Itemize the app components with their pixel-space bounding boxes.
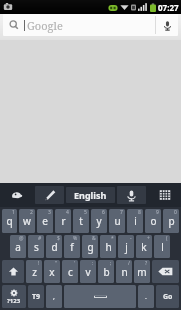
staticText: e	[42, 214, 48, 228]
staticText: b	[103, 265, 110, 279]
staticText: l	[161, 240, 164, 254]
button[interactable]: i	[127, 209, 143, 233]
staticText: j	[125, 240, 128, 254]
button[interactable]: r	[55, 209, 71, 233]
button[interactable]: h	[100, 235, 116, 258]
button[interactable]: English	[66, 187, 115, 203]
staticText: !	[38, 260, 40, 267]
button[interactable]: ,	[46, 285, 62, 308]
staticText: k	[141, 240, 147, 254]
staticText: 7	[120, 209, 123, 216]
staticText: ?	[145, 260, 148, 267]
staticText: h	[105, 240, 112, 254]
button[interactable]: x	[44, 260, 60, 283]
button[interactable]: Search	[3, 14, 178, 36]
staticText: w	[23, 214, 31, 228]
button[interactable]: Shift	[2, 260, 24, 283]
button[interactable]: Symbols	[2, 285, 26, 308]
staticText: +	[147, 235, 150, 242]
staticText: n	[121, 265, 128, 279]
staticText: 6	[102, 209, 105, 216]
button[interactable]: c	[62, 260, 78, 283]
staticText: :	[92, 260, 94, 267]
button[interactable]: Delete	[152, 260, 179, 283]
staticText: ,	[53, 292, 55, 302]
staticText: a	[15, 240, 21, 254]
staticText: /	[128, 260, 130, 267]
button[interactable]: y	[91, 209, 107, 233]
staticText: 5	[84, 209, 87, 216]
staticText: q	[6, 214, 13, 228]
staticText: 8	[138, 209, 141, 216]
button[interactable]: T9	[28, 285, 44, 308]
button[interactable]: k	[136, 235, 152, 258]
staticText: English	[74, 189, 107, 201]
button[interactable]: l	[154, 235, 170, 258]
button[interactable]: Go	[156, 285, 179, 308]
staticText: Google	[27, 18, 63, 33]
button[interactable]: d	[46, 235, 62, 258]
button[interactable]: o	[145, 209, 161, 233]
button[interactable]: z	[26, 260, 42, 283]
staticText: t	[79, 214, 83, 228]
button[interactable]: u	[109, 209, 125, 233]
staticText: s	[34, 240, 39, 254]
staticText: 0	[174, 209, 177, 216]
button[interactable]: Space	[64, 285, 136, 308]
staticText: $	[57, 235, 60, 242]
staticText: x	[49, 265, 55, 279]
button[interactable]: .	[138, 285, 154, 308]
staticText: f	[70, 240, 74, 254]
staticText: i	[134, 214, 137, 228]
staticText: 9	[156, 209, 159, 216]
staticText: "	[55, 260, 58, 267]
button[interactable]: s	[28, 235, 44, 258]
staticText: *	[111, 235, 114, 242]
staticText: d	[51, 240, 58, 254]
staticText: r	[61, 214, 66, 228]
staticText: #	[38, 235, 42, 242]
staticText: g	[87, 240, 94, 254]
staticText: 07:27	[158, 2, 179, 13]
staticText: .	[145, 292, 147, 302]
staticText: -	[130, 235, 132, 242]
staticText: z	[32, 265, 37, 279]
staticText: T9	[32, 292, 41, 302]
staticText: y	[96, 214, 102, 228]
button[interactable]: w	[19, 209, 35, 233]
staticText: v	[85, 265, 91, 279]
button[interactable]: j	[118, 235, 134, 258]
button[interactable]: e	[37, 209, 53, 233]
button[interactable]: Switch keyboard	[148, 183, 181, 207]
staticText: 4	[66, 209, 69, 216]
staticText: p	[168, 214, 175, 228]
staticText: &	[92, 235, 96, 242]
staticText: 3	[48, 209, 51, 216]
button[interactable]: Voice search	[156, 14, 178, 36]
button[interactable]: t	[73, 209, 89, 233]
staticText: Go	[163, 292, 173, 302]
staticText: ?123	[7, 297, 21, 305]
button[interactable]: b	[98, 260, 114, 283]
button[interactable]: Gesture input	[0, 183, 33, 207]
staticText: m	[137, 265, 147, 279]
staticText: o	[150, 214, 157, 228]
button[interactable]: p	[163, 209, 179, 233]
staticText: 2	[30, 209, 33, 216]
button[interactable]: a	[10, 235, 26, 258]
button[interactable]: Voice input	[117, 186, 146, 204]
button[interactable]: v	[80, 260, 96, 283]
button[interactable]: m	[134, 260, 150, 283]
other: Search	[9, 20, 19, 30]
staticText: @	[19, 235, 24, 242]
button[interactable]: n	[116, 260, 132, 283]
staticText: c	[68, 265, 73, 279]
staticText: (	[166, 235, 168, 242]
staticText: %	[73, 235, 78, 242]
button[interactable]: Handwriting	[35, 186, 64, 204]
button[interactable]: q	[2, 209, 17, 233]
staticText: u	[114, 214, 121, 228]
button[interactable]: g	[82, 235, 98, 258]
staticText: 1	[12, 209, 15, 216]
button[interactable]: f	[64, 235, 80, 258]
